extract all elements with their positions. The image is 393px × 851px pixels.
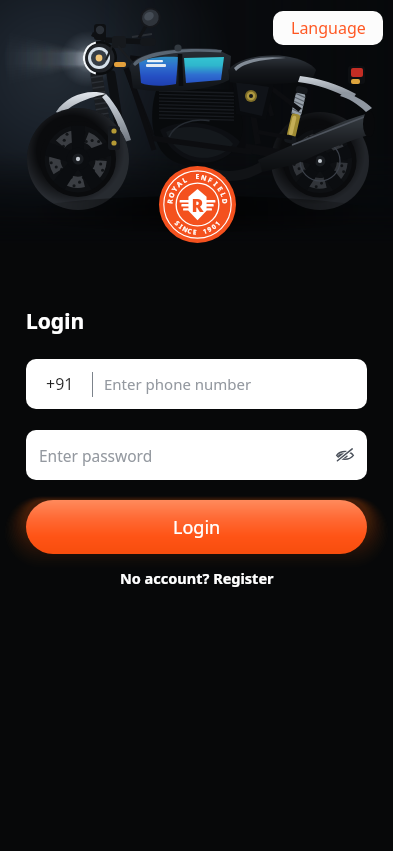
button[interactable]: Show password: [336, 447, 354, 463]
staticText: Language: [291, 17, 366, 39]
button[interactable]: Language: [273, 11, 383, 45]
button[interactable]: Enter password: [26, 430, 367, 480]
button[interactable]: No account? Register: [0, 566, 393, 590]
staticText: Login: [26, 307, 85, 336]
staticText: No account? Register: [120, 568, 274, 588]
staticText: Enter password: [39, 445, 153, 466]
staticText: +91: [46, 373, 74, 395]
staticText: Login: [173, 515, 221, 540]
button[interactable]: +91: [26, 359, 367, 409]
staticText: Enter phone number: [104, 374, 252, 394]
button[interactable]: Login: [26, 500, 367, 554]
